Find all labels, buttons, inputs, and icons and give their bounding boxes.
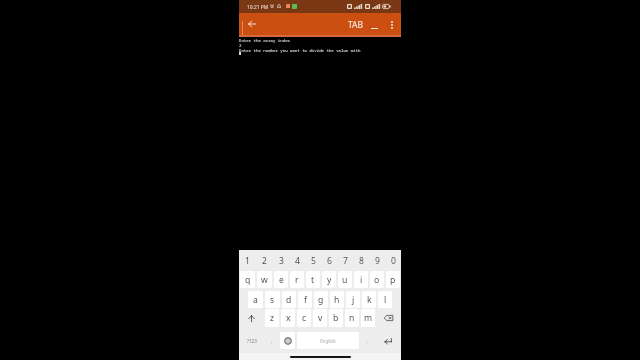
staticText: d [286, 294, 292, 306]
button[interactable]: t [306, 271, 320, 288]
staticText: 9 [375, 255, 380, 267]
staticText: b [333, 312, 339, 324]
button[interactable]: ?123 [240, 332, 264, 349]
staticText: n [349, 312, 355, 324]
button[interactable]: Back [244, 16, 260, 32]
staticText: v [318, 312, 323, 324]
button[interactable]: b [329, 309, 343, 327]
staticText: . [367, 337, 369, 344]
staticText: x [286, 312, 291, 324]
staticText: y [327, 274, 332, 286]
staticText: TAB [348, 19, 363, 30]
button[interactable]: p [386, 271, 400, 288]
button[interactable]: 3 [273, 251, 289, 271]
staticText: o [374, 274, 380, 286]
staticText: a [253, 294, 258, 306]
button[interactable]: 1 [239, 251, 256, 271]
staticText: k [367, 294, 372, 306]
staticText: Enter the number you want to divide the … [239, 48, 361, 54]
staticText: i [360, 274, 363, 286]
staticText: s [270, 294, 275, 306]
button[interactable]: r [290, 271, 304, 288]
staticText: , [271, 337, 273, 344]
button[interactable]: Shift [239, 309, 264, 327]
button[interactable]: Change language [280, 332, 295, 349]
button[interactable]: h [330, 291, 344, 308]
button[interactable]: e [274, 271, 288, 288]
button[interactable]: g [314, 291, 328, 308]
button[interactable]: Enter [376, 332, 400, 349]
staticText: f [304, 294, 307, 306]
staticText: j [352, 294, 355, 306]
staticText: u [342, 274, 348, 286]
button[interactable]: d [282, 291, 296, 308]
staticText: ?123 [247, 338, 257, 344]
button[interactable]: 7 [337, 251, 353, 271]
staticText: p [390, 274, 396, 286]
staticText: 10:21 PM [247, 4, 269, 11]
staticText: t [311, 274, 315, 286]
button[interactable]: o [370, 271, 384, 288]
staticText: z [270, 312, 275, 324]
button[interactable]: a [248, 291, 263, 308]
button[interactable]: Minimize [365, 15, 384, 35]
button[interactable]: 2 [256, 251, 273, 271]
staticText: m [364, 312, 373, 324]
staticText: 3 [279, 255, 284, 267]
staticText: 1 [245, 255, 250, 267]
staticText: 5 [311, 255, 316, 267]
staticText: 7 [343, 255, 348, 267]
button[interactable]: i [354, 271, 368, 288]
button[interactable]: s [265, 291, 280, 308]
staticText: c [302, 312, 307, 324]
button[interactable]: u [338, 271, 352, 288]
button[interactable]: w [257, 271, 272, 288]
button[interactable]: k [362, 291, 376, 308]
staticText: q [245, 274, 251, 286]
button[interactable]: v [313, 309, 327, 327]
button[interactable]: z [265, 309, 279, 327]
staticText: g [318, 294, 324, 306]
button[interactable]: 6 [321, 251, 337, 271]
button[interactable]: y [322, 271, 336, 288]
staticText: 4 [295, 255, 300, 267]
button[interactable]: 5 [305, 251, 321, 271]
staticText: English [320, 338, 336, 344]
button[interactable]: f [298, 291, 312, 308]
button[interactable]: c [297, 309, 311, 327]
button[interactable]: m [361, 309, 375, 327]
staticText: 6 [327, 255, 332, 267]
button[interactable]: TAB [348, 17, 363, 32]
button[interactable]: x [281, 309, 295, 327]
staticText: r [295, 274, 299, 286]
button[interactable]: English [297, 332, 359, 349]
button[interactable]: 9 [369, 251, 385, 271]
button[interactable]: j [346, 291, 360, 308]
staticText: h [334, 294, 340, 306]
button[interactable]: n [345, 309, 359, 327]
button[interactable]: l [378, 291, 392, 308]
button[interactable]: 0 [385, 251, 401, 271]
button[interactable]: Backspace [376, 309, 401, 327]
staticText: e [279, 274, 284, 286]
staticText: 8 [359, 255, 364, 267]
staticText: Enter the array index [239, 38, 290, 44]
button[interactable]: 4 [289, 251, 305, 271]
button[interactable]: 8 [353, 251, 369, 271]
staticText: 2 [262, 255, 267, 267]
staticText: 2 [239, 43, 242, 49]
staticText: l [384, 294, 387, 306]
staticText: 0 [391, 255, 396, 267]
button[interactable]: q [240, 271, 255, 288]
staticText: w [261, 274, 268, 286]
button[interactable]: More options [384, 15, 400, 35]
